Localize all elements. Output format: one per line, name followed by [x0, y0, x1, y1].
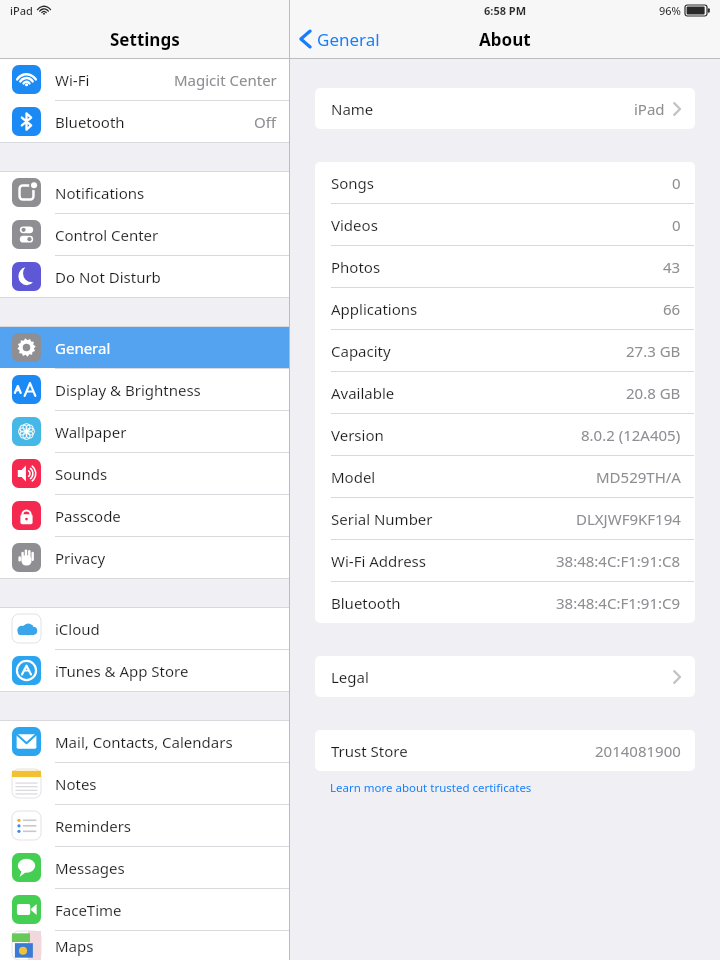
button[interactable]: Privacy: [0, 537, 289, 578]
staticText: Learn more about trusted certificates: [330, 780, 532, 796]
button[interactable]: iTunes & App Store: [0, 650, 289, 691]
staticText: Photos: [331, 257, 381, 277]
staticText: Maps: [55, 936, 94, 956]
staticText: 38:48:4C:F1:91:C9: [556, 593, 681, 613]
button[interactable]: iCloud: [0, 608, 289, 649]
button[interactable]: Bluetooth: [0, 101, 289, 142]
staticText: Settings: [110, 28, 180, 51]
staticText: Privacy: [55, 548, 106, 568]
staticText: 0: [672, 173, 681, 193]
staticText: Serial Number: [331, 509, 433, 529]
button[interactable]: Capacity: [315, 330, 695, 371]
button[interactable]: Model: [315, 456, 695, 497]
button[interactable]: Notifications: [0, 172, 289, 213]
button[interactable]: Available: [315, 372, 695, 413]
staticText: iTunes & App Store: [55, 661, 189, 681]
button[interactable]: Songs: [315, 162, 695, 203]
staticText: iPad: [10, 3, 33, 18]
staticText: 27.3 GB: [626, 341, 681, 361]
button[interactable]: Wi-Fi: [0, 59, 289, 100]
staticText: Wi-Fi Address: [331, 551, 426, 571]
button[interactable]: Learn more about trusted certificates: [315, 778, 532, 798]
button[interactable]: Mail, Contacts, Calendars: [0, 721, 289, 762]
staticText: iPad: [634, 99, 665, 119]
staticText: Reminders: [55, 816, 132, 836]
staticText: Control Center: [55, 225, 159, 245]
button[interactable]: Applications: [315, 288, 695, 329]
staticText: About: [479, 28, 531, 51]
button[interactable]: Legal: [315, 656, 695, 697]
staticText: iCloud: [55, 619, 100, 639]
staticText: Magicit Center: [174, 70, 277, 90]
staticText: Name: [331, 99, 374, 119]
button[interactable]: Wallpaper: [0, 411, 289, 452]
staticText: Songs: [331, 173, 374, 193]
staticText: 6:58 PM: [484, 3, 527, 18]
button[interactable]: Bluetooth: [315, 582, 695, 623]
staticText: DLXJWF9KF194: [576, 509, 681, 529]
staticText: 0: [672, 215, 681, 235]
staticText: Videos: [331, 215, 378, 235]
staticText: 66: [663, 299, 681, 319]
button[interactable]: Passcode: [0, 495, 289, 536]
button[interactable]: Name: [315, 88, 695, 129]
staticText: Wi-Fi: [55, 70, 90, 90]
button[interactable]: Maps: [0, 931, 289, 960]
staticText: Notes: [55, 774, 97, 794]
staticText: 43: [663, 257, 681, 277]
staticText: Messages: [55, 858, 125, 878]
button[interactable]: Control Center: [0, 214, 289, 255]
button[interactable]: Wi-Fi Address: [315, 540, 695, 581]
staticText: Passcode: [55, 506, 121, 526]
button[interactable]: Display & Brightness: [0, 369, 289, 410]
button[interactable]: General: [290, 20, 388, 58]
button[interactable]: Do Not Disturb: [0, 256, 289, 297]
button[interactable]: Version: [315, 414, 695, 455]
button[interactable]: Photos: [315, 246, 695, 287]
button[interactable]: Messages: [0, 847, 289, 888]
staticText: Sounds: [55, 464, 108, 484]
staticText: Legal: [331, 667, 369, 687]
staticText: 2014081900: [595, 741, 681, 761]
staticText: Wallpaper: [55, 422, 127, 442]
staticText: Applications: [331, 299, 418, 319]
staticText: Do Not Disturb: [55, 267, 161, 287]
staticText: Off: [254, 112, 277, 132]
staticText: Trust Store: [331, 741, 408, 761]
staticText: Capacity: [331, 341, 391, 361]
staticText: Display & Brightness: [55, 380, 201, 400]
button[interactable]: Sounds: [0, 453, 289, 494]
staticText: 38:48:4C:F1:91:C8: [556, 551, 681, 571]
staticText: General: [317, 28, 380, 51]
button[interactable]: Trust Store: [315, 730, 695, 771]
staticText: 96%: [659, 3, 681, 18]
staticText: Bluetooth: [331, 593, 401, 613]
staticText: Model: [331, 467, 376, 487]
staticText: Bluetooth: [55, 112, 125, 132]
staticText: General: [55, 338, 111, 358]
staticText: Version: [331, 425, 384, 445]
staticText: FaceTime: [55, 900, 122, 920]
staticText: Available: [331, 383, 395, 403]
staticText: 20.8 GB: [626, 383, 681, 403]
staticText: Notifications: [55, 183, 145, 203]
staticText: 8.0.2 (12A405): [581, 425, 681, 445]
staticText: Mail, Contacts, Calendars: [55, 732, 233, 752]
button[interactable]: General: [0, 327, 289, 368]
button[interactable]: Serial Number: [315, 498, 695, 539]
button[interactable]: Notes: [0, 763, 289, 804]
staticText: MD529TH/A: [596, 467, 681, 487]
button[interactable]: FaceTime: [0, 889, 289, 930]
button[interactable]: Videos: [315, 204, 695, 245]
button[interactable]: Reminders: [0, 805, 289, 846]
